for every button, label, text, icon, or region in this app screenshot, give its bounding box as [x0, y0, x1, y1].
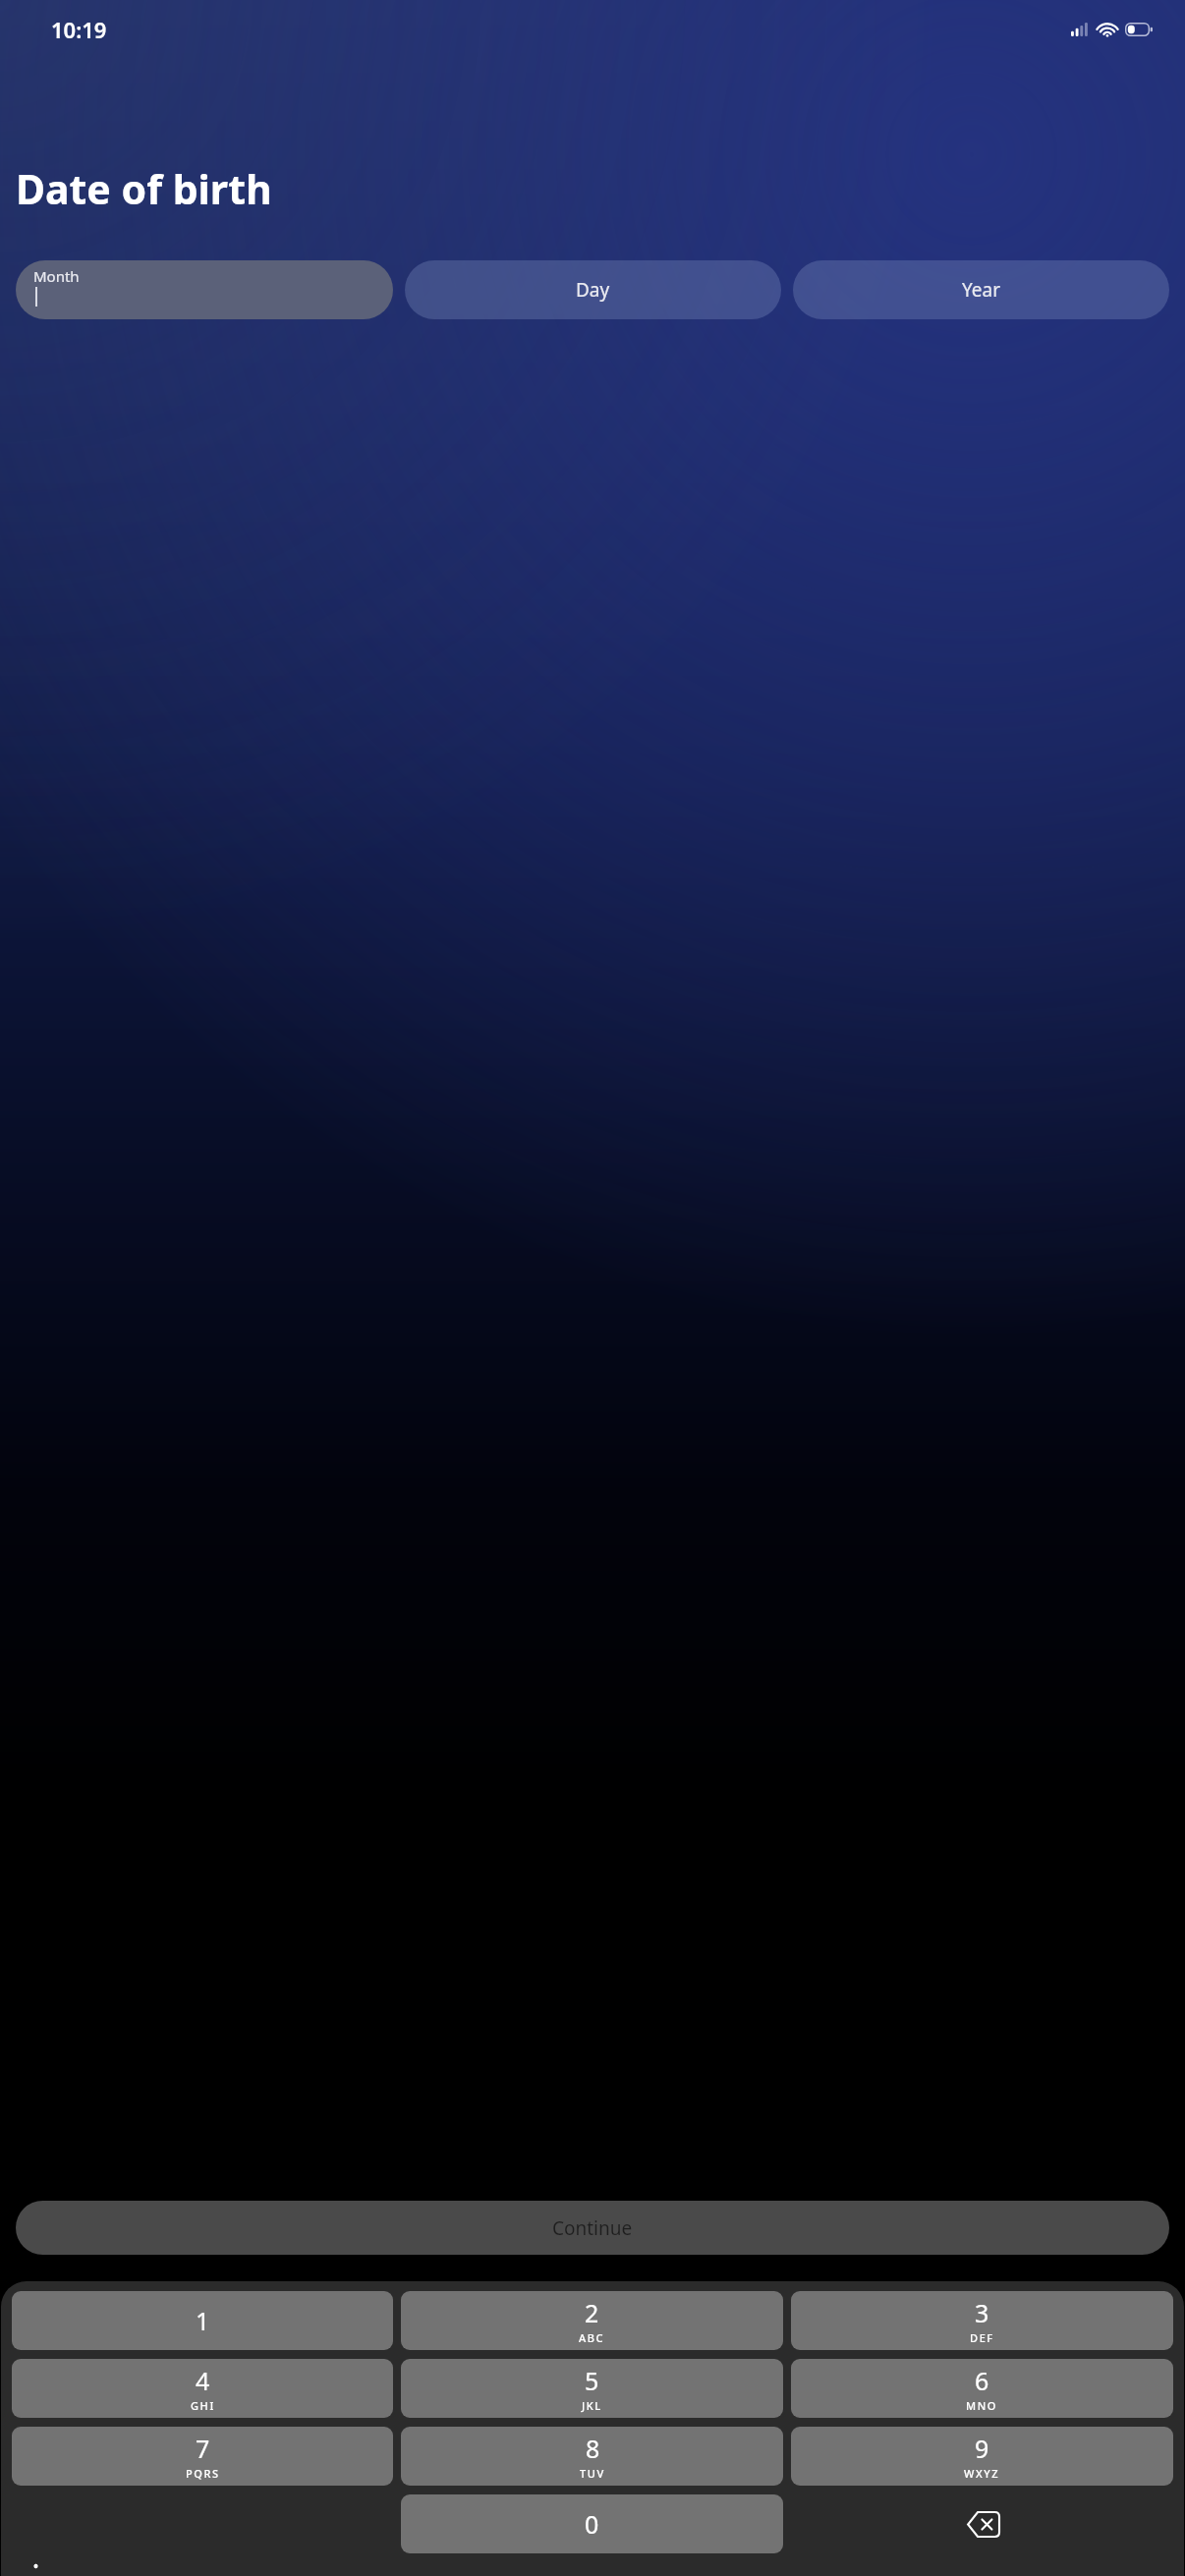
staticText: ABC — [579, 2330, 605, 2345]
staticText: 5 — [585, 2364, 599, 2397]
button[interactable]: Day — [405, 260, 781, 319]
button[interactable]: Year — [793, 260, 1169, 319]
staticText: 8 — [586, 2432, 600, 2465]
staticText: Date of birth — [16, 161, 272, 216]
staticText: 3 — [975, 2296, 989, 2329]
staticText: TUV — [580, 2466, 605, 2481]
button[interactable]: 3 — [791, 2291, 1173, 2350]
staticText: PQRS — [186, 2466, 220, 2481]
button[interactable]: 0 — [401, 2494, 783, 2553]
staticText: JKL — [582, 2398, 602, 2413]
staticText: 7 — [196, 2432, 210, 2465]
staticText: MNO — [966, 2398, 998, 2413]
button[interactable]: 4 — [12, 2359, 393, 2418]
staticText: 4 — [196, 2364, 210, 2397]
button[interactable]: 8 — [401, 2427, 783, 2486]
staticText: 0 — [585, 2507, 599, 2541]
staticText: 6 — [975, 2364, 989, 2397]
staticText: 9 — [975, 2432, 989, 2465]
staticText: 1 — [196, 2304, 210, 2337]
button[interactable]: 6 — [791, 2359, 1173, 2418]
button[interactable]: 2 — [401, 2291, 783, 2350]
button[interactable]: Continue — [16, 2201, 1169, 2255]
staticText: WXYZ — [964, 2466, 1000, 2481]
staticText: Day — [576, 277, 610, 303]
button[interactable]: 1 — [12, 2291, 393, 2350]
button[interactable]: 9 — [791, 2427, 1173, 2486]
staticText: 10:19 — [51, 15, 107, 44]
staticText: Year — [962, 277, 1001, 303]
staticText: DEF — [970, 2330, 994, 2345]
staticText: 2 — [585, 2296, 599, 2329]
staticText: Month — [33, 266, 80, 286]
button[interactable]: 5 — [401, 2359, 783, 2418]
button[interactable]: Backspace — [791, 2494, 1173, 2553]
staticText: Continue — [552, 2215, 633, 2241]
staticText: GHI — [191, 2398, 215, 2413]
button[interactable]: 7 — [12, 2427, 393, 2486]
button[interactable]: Month — [16, 260, 393, 319]
